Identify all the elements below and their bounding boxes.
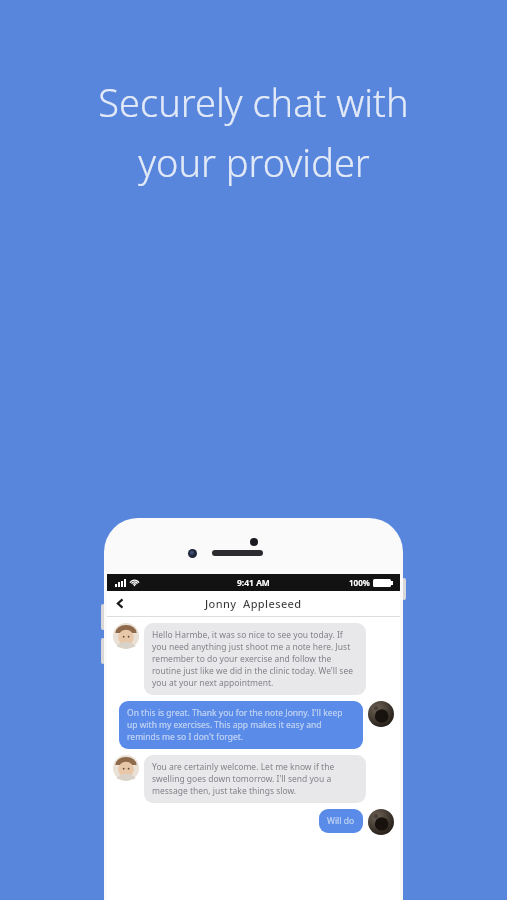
staticText: You are certainly welcome. Let me know i… [152,761,358,797]
button[interactable]: Back [107,591,133,616]
staticText: Jonny Appleseed [205,596,302,611]
button[interactable]: Will do [113,809,394,835]
staticText: On this is great. Thank you for the note… [127,707,355,743]
button[interactable]: Hello Harmbe, it was so nice to see you … [113,623,394,695]
staticText: Will do [327,815,355,827]
staticText: Securely chat with [98,76,409,128]
staticText: Hello Harmbe, it was so nice to see you … [152,629,358,689]
button[interactable]: Back [107,591,400,616]
staticText: 100% [349,577,370,588]
staticText: your provider [138,136,370,188]
staticText: 9:41 AM [237,577,270,589]
button[interactable]: You are certainly welcome. Let me know i… [113,755,394,803]
button[interactable]: On this is great. Thank you for the note… [113,701,394,749]
